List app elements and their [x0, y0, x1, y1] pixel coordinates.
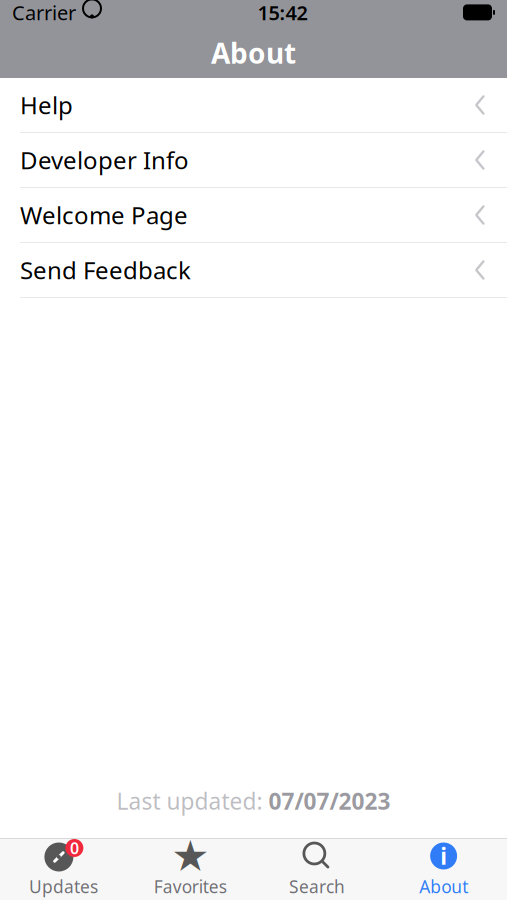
button[interactable]: Search: [253, 838, 380, 900]
staticText: Welcome Page: [20, 199, 188, 231]
staticText: Help: [20, 89, 73, 121]
staticText: 0: [70, 837, 79, 859]
staticText: Send Feedback: [20, 254, 191, 286]
staticText: About: [211, 34, 296, 72]
button[interactable]: Welcome Page: [0, 188, 507, 243]
staticText: Search: [289, 875, 345, 898]
button[interactable]: ★: [127, 838, 254, 900]
staticText: ★: [171, 832, 209, 880]
button[interactable]: Send Feedback: [0, 243, 507, 298]
button[interactable]: Developer Info: [0, 133, 507, 188]
button[interactable]: 0: [0, 838, 127, 900]
staticText: Last updated:: [116, 786, 268, 816]
staticText: About: [419, 875, 468, 898]
staticText: i: [440, 841, 447, 871]
staticText: 15:42: [257, 0, 307, 26]
staticText: Carrier: [12, 0, 76, 26]
button[interactable]: i: [380, 838, 507, 900]
staticText: Updates: [29, 875, 98, 898]
button[interactable]: Help: [0, 78, 507, 133]
staticText: 07/07/2023: [268, 786, 390, 816]
staticText: Developer Info: [20, 144, 189, 176]
staticText: Favorites: [154, 875, 227, 898]
